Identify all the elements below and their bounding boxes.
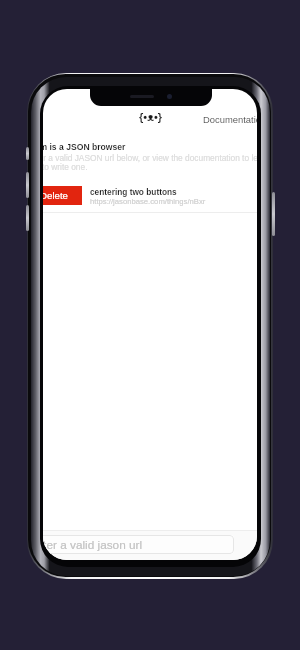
staticText: https://jasonbase.com/things/nBxr xyxy=(90,197,206,206)
button[interactable]: enter a valid jason url xyxy=(43,535,234,554)
staticText: Documentation xyxy=(203,114,257,125)
button[interactable]: Delete xyxy=(43,186,82,205)
staticText: Delete xyxy=(43,190,69,201)
button[interactable]: jasonbase home xyxy=(139,111,163,123)
staticText: jasonbase.com is a JSON browser xyxy=(43,142,126,152)
button[interactable]: Documentation xyxy=(203,114,257,127)
staticText: {•ᴥ•} xyxy=(139,111,163,123)
button[interactable]: centering two buttons xyxy=(84,185,257,210)
staticText: Enter a valid JASON url below, or view t… xyxy=(43,153,257,162)
staticText: enter a valid jason url xyxy=(43,538,143,551)
staticText: to write one. xyxy=(43,162,88,171)
staticText: centering two buttons xyxy=(90,187,177,196)
